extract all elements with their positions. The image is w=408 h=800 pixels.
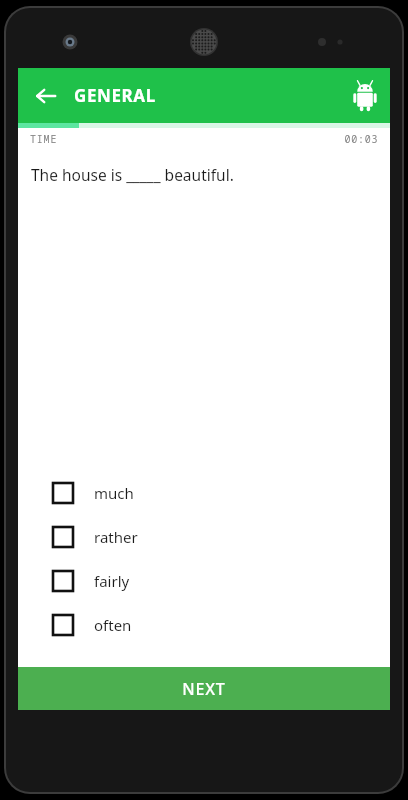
button[interactable]: Back — [18, 68, 74, 123]
button[interactable]: fairly — [18, 559, 390, 603]
button[interactable]: NEXT — [18, 667, 390, 710]
button[interactable]: often — [18, 603, 390, 647]
staticText: TIME — [30, 132, 58, 146]
staticText: GENERAL — [74, 84, 156, 107]
button[interactable]: much — [18, 471, 390, 515]
staticText: NEXT — [182, 678, 226, 700]
staticText: The house is _____ beautiful. — [31, 164, 234, 185]
staticText: fairly — [94, 571, 130, 591]
button[interactable]: Android — [340, 68, 390, 123]
staticText: much — [94, 483, 134, 503]
button[interactable]: rather — [18, 515, 390, 559]
staticText: often — [94, 615, 132, 635]
staticText: 00:03 — [344, 132, 378, 146]
staticText: rather — [94, 527, 138, 547]
